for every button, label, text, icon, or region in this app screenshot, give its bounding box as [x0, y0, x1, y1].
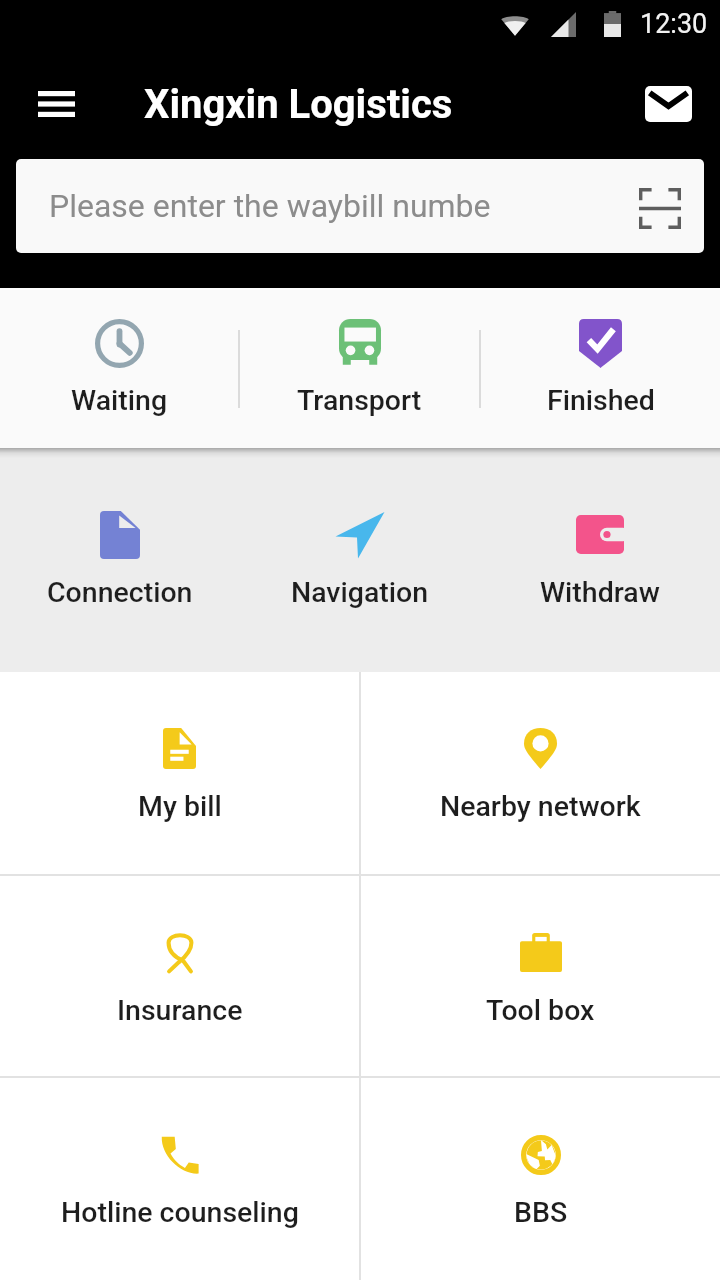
button[interactable]: Withdraw	[480, 458, 720, 672]
button[interactable]: Scan barcode	[630, 178, 690, 238]
staticText: Navigation	[291, 576, 429, 609]
staticText: Please enter the waybill numbe	[49, 187, 491, 225]
button[interactable]: Connection	[0, 458, 240, 672]
staticText: Connection	[47, 576, 193, 609]
button[interactable]: Insurance	[0, 876, 359, 1076]
button[interactable]: Finished	[481, 288, 720, 449]
staticText: Nearby network	[440, 790, 641, 823]
button[interactable]: BBS	[361, 1078, 720, 1280]
button[interactable]: Please enter the waybill numbe	[16, 159, 704, 253]
staticText: Xingxin Logistics	[144, 81, 453, 128]
staticText: Insurance	[117, 994, 243, 1027]
button[interactable]: Waiting	[0, 288, 238, 449]
button[interactable]: Messages	[634, 70, 702, 138]
staticText: Transport	[297, 384, 422, 417]
staticText: Hotline counseling	[61, 1196, 299, 1229]
staticText: BBS	[514, 1196, 568, 1229]
button[interactable]: Tool box	[361, 876, 720, 1076]
button[interactable]: Transport	[240, 288, 479, 449]
staticText: Tool box	[486, 994, 595, 1027]
button[interactable]: Nearby network	[361, 672, 720, 874]
staticText: Waiting	[71, 384, 168, 417]
staticText: Withdraw	[540, 576, 660, 609]
button[interactable]: Hotline counseling	[0, 1078, 359, 1280]
staticText: My bill	[138, 790, 222, 823]
button[interactable]: Open navigation menu	[22, 70, 90, 138]
staticText: 12:30	[640, 8, 708, 40]
staticText: Finished	[547, 384, 655, 417]
button[interactable]: My bill	[0, 672, 359, 874]
button[interactable]: Navigation	[240, 458, 480, 672]
